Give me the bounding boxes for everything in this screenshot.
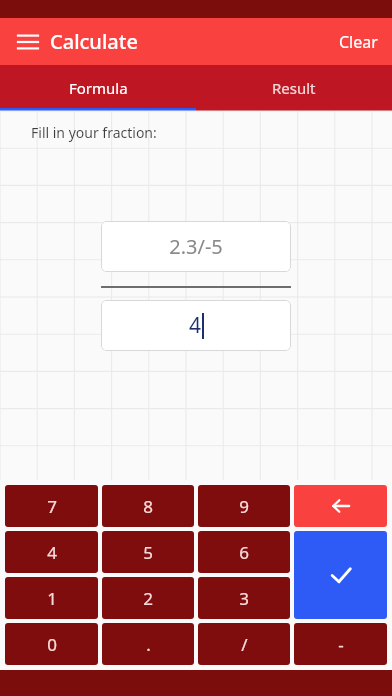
- button[interactable]: 7: [5, 485, 98, 527]
- staticText: 2.3/-5: [169, 233, 223, 260]
- staticText: 8: [143, 495, 153, 518]
- button[interactable]: 8: [102, 485, 194, 527]
- staticText: 3: [239, 587, 249, 610]
- staticText: 0: [47, 633, 57, 656]
- button[interactable]: Confirm: [294, 531, 387, 619]
- staticText: Clear: [339, 31, 378, 53]
- button[interactable]: Result: [196, 65, 392, 111]
- staticText: .: [146, 633, 151, 656]
- button[interactable]: 1: [5, 577, 98, 619]
- button[interactable]: 0: [5, 623, 98, 665]
- staticText: 6: [239, 541, 249, 564]
- button[interactable]: /: [198, 623, 290, 665]
- staticText: -: [338, 633, 344, 656]
- button[interactable]: 5: [102, 531, 194, 573]
- button[interactable]: 2: [102, 577, 194, 619]
- staticText: 7: [47, 495, 57, 518]
- staticText: Formula: [69, 78, 128, 98]
- staticText: 5: [143, 541, 153, 564]
- staticText: 2: [143, 587, 153, 610]
- staticText: 4: [189, 311, 202, 340]
- button[interactable]: 9: [198, 485, 290, 527]
- staticText: 9: [239, 495, 249, 518]
- button[interactable]: 4: [5, 531, 98, 573]
- button[interactable]: Open navigation menu: [8, 22, 48, 62]
- button[interactable]: Clear: [325, 21, 392, 63]
- button[interactable]: .: [102, 623, 194, 665]
- button[interactable]: Formula: [0, 65, 196, 111]
- button[interactable]: 2.3/-5: [101, 221, 291, 272]
- staticText: /: [241, 633, 248, 656]
- button[interactable]: -: [294, 623, 387, 665]
- button[interactable]: 6: [198, 531, 290, 573]
- button[interactable]: 4: [101, 300, 291, 351]
- staticText: Calculate: [50, 28, 138, 55]
- button[interactable]: 3: [198, 577, 290, 619]
- staticText: Fill in your fraction:: [31, 123, 157, 142]
- staticText: 1: [47, 587, 57, 610]
- staticText: 4: [47, 541, 57, 564]
- staticText: Result: [272, 78, 316, 98]
- button[interactable]: Backspace: [294, 485, 387, 527]
